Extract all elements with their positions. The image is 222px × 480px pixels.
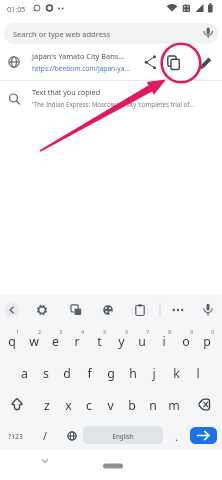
staticText: i <box>162 333 166 350</box>
staticText: u <box>138 333 146 350</box>
staticText: b <box>128 397 136 414</box>
staticText: t <box>97 333 102 350</box>
staticText: w <box>29 333 39 350</box>
staticText: k <box>173 365 180 382</box>
staticText: 9 <box>190 329 193 336</box>
staticText: / <box>43 429 47 443</box>
staticText: l <box>196 365 200 382</box>
staticText: 6 <box>125 329 128 336</box>
staticText: 1 <box>16 329 19 336</box>
staticText: x <box>65 397 72 414</box>
staticText: 2 <box>38 329 41 336</box>
staticText: j <box>152 365 156 382</box>
staticText: o <box>182 333 190 350</box>
staticText: y <box>118 333 125 350</box>
staticText: h <box>129 365 137 382</box>
staticText: g <box>107 365 115 382</box>
staticText: m <box>168 397 180 414</box>
staticText: v <box>107 397 114 414</box>
staticText: z <box>44 397 50 414</box>
staticText: ?123 <box>8 432 23 441</box>
staticText: Search or type web address <box>13 29 111 39</box>
staticText: 01:05 <box>7 4 26 14</box>
staticText: 0 <box>211 329 214 336</box>
staticText: c <box>86 397 92 414</box>
staticText: q <box>8 333 16 350</box>
staticText: a <box>21 365 28 382</box>
staticText: n <box>149 397 157 414</box>
staticText: 5 <box>103 329 106 336</box>
staticText: https://beebom.com/japan-ya... <box>32 64 130 73</box>
staticText: Text that you copied <box>32 87 101 97</box>
staticText: 3 <box>59 329 62 336</box>
staticText: r <box>74 333 80 350</box>
staticText: English <box>112 432 134 440</box>
staticText: 'The Indian Express: Moscow varsity 'com… <box>32 100 195 108</box>
staticText: 4 <box>81 329 84 336</box>
staticText: 8 <box>168 329 171 336</box>
staticText: . <box>175 430 178 444</box>
staticText: 7 <box>146 329 149 336</box>
staticText: p <box>203 333 211 350</box>
staticText: Japan's Yamato City Bans... <box>32 51 125 61</box>
staticText: f <box>87 365 92 382</box>
staticText: e <box>52 333 59 350</box>
staticText: s <box>43 365 49 382</box>
staticText: d <box>63 365 71 382</box>
